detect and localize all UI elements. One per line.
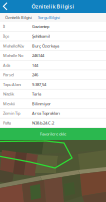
- staticText: Bilinmiyor: [32, 101, 51, 106]
- staticText: Burç Özerkaya: [32, 43, 59, 48]
- staticText: N38-b-24-C-2: [32, 120, 54, 126]
- staticText: Öznitelik Bilgisi: [5, 15, 32, 20]
- staticText: Öznitelik Bilgisi: [31, 3, 74, 10]
- staticText: 246144: [32, 53, 44, 58]
- staticText: Gaziantep: [32, 24, 49, 29]
- staticText: Mevkii: [3, 101, 15, 106]
- button[interactable]: Favorilere ekle: [0, 128, 106, 140]
- staticText: 144: [32, 62, 38, 68]
- staticText: Mahalle No: [3, 53, 23, 58]
- staticText: Mahalle/Köy: [3, 43, 24, 48]
- staticText: Arsa Toprakları: [32, 111, 60, 116]
- staticText: Pafta: [3, 120, 11, 126]
- staticText: İl: [3, 24, 5, 29]
- staticText: Zemin Tip: [3, 111, 20, 116]
- button[interactable]: Geri: [0, 0, 12, 12]
- staticText: Tarla: [32, 91, 41, 97]
- staticText: Tapu Alanı: [3, 82, 21, 87]
- staticText: Sorgu Bilgisi: [38, 15, 60, 20]
- staticText: 246: [32, 72, 38, 77]
- button[interactable]: Sorgu Bilgisi: [35, 13, 63, 22]
- staticText: Şehitkamil: [32, 33, 50, 39]
- staticText: Favorilere ekle: [40, 131, 66, 137]
- staticText: Ada: [3, 62, 10, 68]
- staticText: Parsel: [3, 72, 14, 77]
- staticText: İlçe: [3, 33, 9, 39]
- staticText: Nitelik: [3, 91, 14, 97]
- staticText: 9.387,54: [32, 82, 46, 87]
- button[interactable]: Öznitelik Bilgisi: [2, 13, 35, 22]
